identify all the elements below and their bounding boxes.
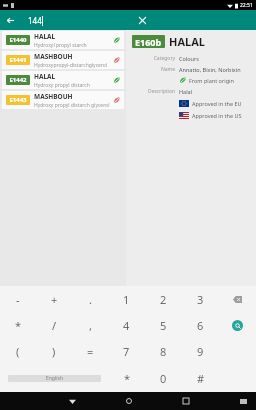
staticText: MASHBOUH [34, 92, 73, 101]
button[interactable]: 3 [182, 286, 219, 312]
button[interactable]: E1443 [2, 91, 124, 109]
button[interactable]: 2 [145, 286, 182, 312]
button[interactable]: 9 [182, 338, 219, 365]
staticText: 4 [123, 318, 130, 333]
staticText: 9 [197, 344, 204, 359]
button[interactable]: * [109, 365, 145, 392]
button[interactable]: Back [63, 392, 81, 410]
button[interactable]: 4 [108, 312, 145, 338]
staticText: Halal [179, 88, 193, 95]
button[interactable]: 0 [145, 365, 182, 392]
button[interactable]: E1442 [2, 71, 124, 89]
staticText: 7 [123, 344, 130, 359]
staticText: Approved in the US [192, 112, 242, 119]
button[interactable]: 6 [182, 312, 219, 338]
staticText: English [46, 375, 64, 382]
button[interactable]: , [72, 312, 108, 338]
staticText: 6 [197, 318, 204, 333]
button[interactable]: Back [0, 10, 20, 30]
staticText: - [16, 292, 20, 307]
staticText: 22:51 [240, 2, 253, 9]
button[interactable]: 5 [145, 312, 182, 338]
staticText: HALAL [34, 32, 56, 41]
button[interactable]: E1440 [2, 31, 124, 49]
staticText: + [51, 292, 58, 307]
button[interactable]: 1 [108, 286, 145, 312]
staticText: 2 [160, 292, 167, 307]
staticText: Colours [179, 55, 199, 62]
button[interactable]: ( [0, 338, 36, 365]
button[interactable]: Search [219, 312, 256, 338]
button[interactable]: Clear [132, 10, 152, 30]
staticText: E160b [135, 36, 162, 48]
button[interactable]: English [0, 365, 109, 392]
staticText: # [197, 371, 205, 386]
staticText: Hydroxy propyl distarch phosphate [34, 82, 111, 89]
staticText: E1440 [9, 36, 27, 44]
staticText: Hydroxy propyl distarch glycerol [34, 102, 110, 109]
staticText: 0 [160, 371, 167, 386]
staticText: Hydroxyl propyl starch [34, 42, 87, 49]
staticText: , [89, 318, 92, 333]
staticText: 3 [197, 292, 204, 307]
staticText: Category [153, 55, 175, 62]
staticText: From plant origin [189, 77, 234, 84]
button[interactable]: 8 [145, 338, 182, 365]
staticText: ) [52, 344, 56, 359]
staticText: 8 [160, 344, 167, 359]
staticText: / [52, 318, 57, 333]
staticText: * [124, 371, 131, 386]
button[interactable]: Backspace [219, 286, 256, 312]
staticText: E1443 [9, 96, 27, 104]
staticText: HALAL [169, 34, 205, 49]
button[interactable]: . [72, 286, 108, 312]
button[interactable]: E1441 [2, 51, 124, 69]
button[interactable]: + [36, 286, 72, 312]
staticText: * [15, 318, 22, 333]
staticText: ( [16, 344, 20, 359]
staticText: MASHBOUH [34, 52, 73, 61]
button[interactable]: / [36, 312, 72, 338]
staticText: . [89, 292, 92, 307]
staticText: Hydroxypropyl-distarchglycerol [34, 62, 108, 69]
staticText: Approved in the EU [192, 100, 242, 107]
button[interactable]: = [72, 338, 108, 365]
button[interactable]: ) [36, 338, 72, 365]
staticText: Name [160, 66, 175, 73]
staticText: HALAL [34, 72, 56, 81]
button[interactable]: Home [120, 392, 138, 410]
staticText: Description [148, 88, 175, 95]
button[interactable]: - [0, 286, 36, 312]
staticText: E1441 [9, 56, 27, 64]
staticText: 1 [123, 292, 130, 307]
button[interactable]: Keyboard [234, 392, 252, 410]
staticText: Annatto, Bixin, Norbixin [179, 66, 241, 73]
staticText: 144 [28, 15, 42, 26]
staticText: 5 [160, 318, 167, 333]
staticText: = [87, 344, 94, 359]
button[interactable]: # [182, 365, 219, 392]
button[interactable]: 7 [108, 338, 145, 365]
staticText: E1442 [9, 76, 27, 84]
button[interactable]: Recent apps [177, 392, 195, 410]
button[interactable]: * [0, 312, 36, 338]
